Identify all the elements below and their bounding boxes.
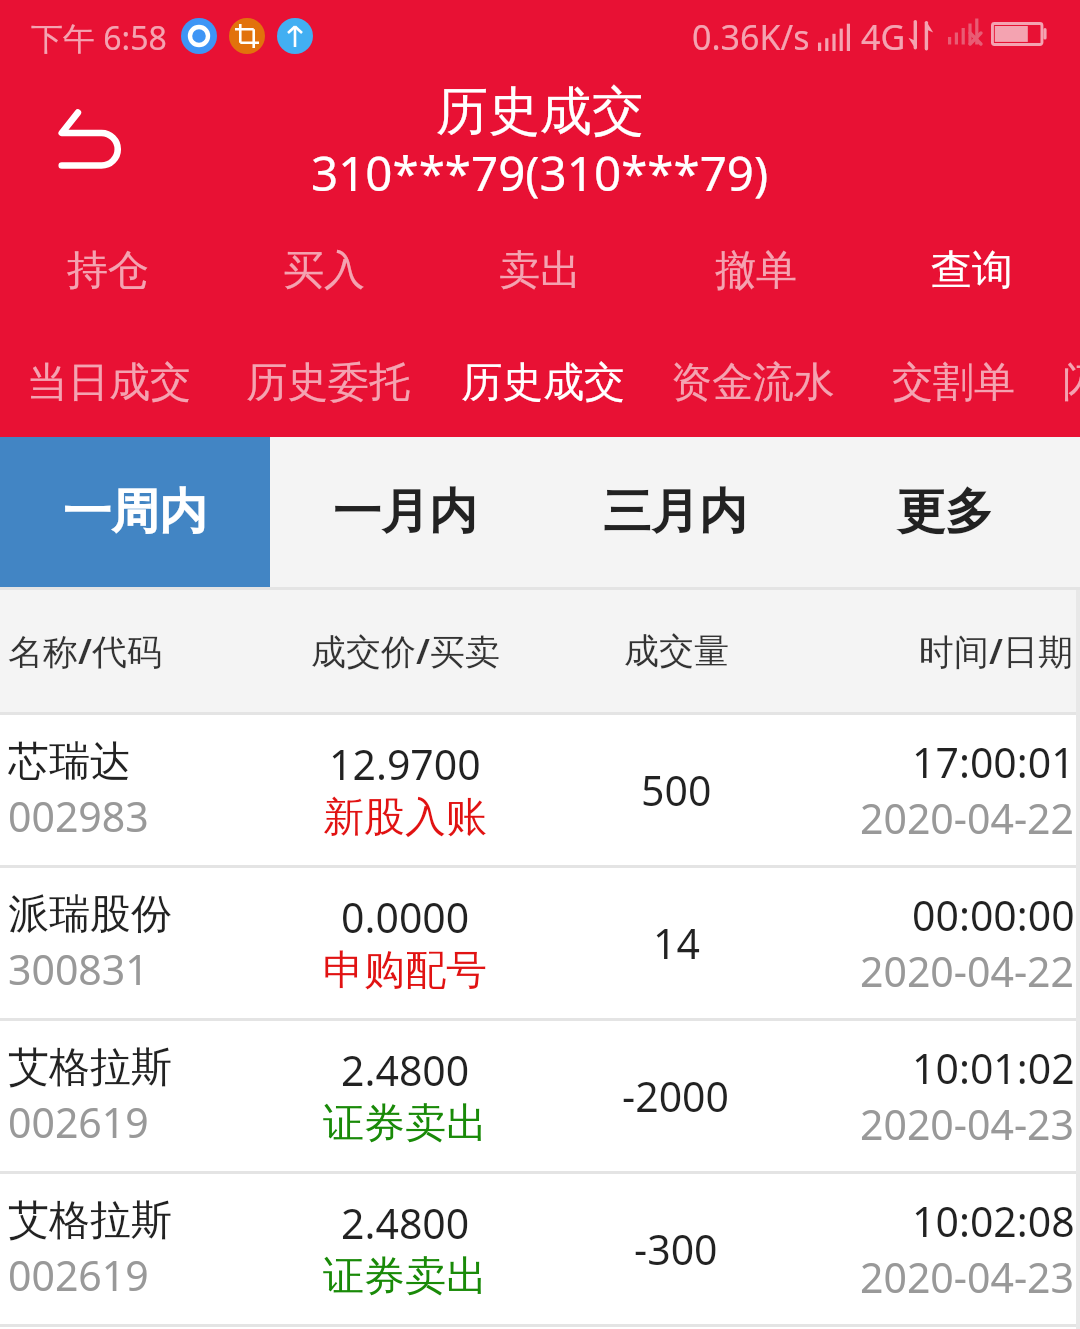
staticText: 撤单: [715, 245, 797, 297]
staticText: 一周内: [63, 482, 207, 542]
staticText: 名称/代码: [8, 627, 162, 675]
staticText: -2000: [622, 1068, 730, 1124]
staticText: 历史委托: [246, 357, 410, 409]
button[interactable]: 三月内: [540, 437, 810, 587]
button[interactable]: 艾格拉斯: [0, 1174, 1080, 1324]
staticText: 时间/日期: [919, 627, 1073, 675]
staticText: 成交量: [624, 629, 729, 673]
staticText: 艾格拉斯: [8, 1042, 172, 1094]
button[interactable]: 派瑞股份: [0, 868, 1080, 1018]
staticText: -300: [634, 1221, 718, 1277]
staticText: 一月内: [333, 482, 477, 542]
button[interactable]: 一月内: [270, 437, 540, 587]
staticText: 10:02:08: [912, 1193, 1075, 1249]
button[interactable]: 历史委托: [246, 350, 410, 416]
staticText: 更多: [897, 482, 993, 542]
staticText: 0.0000: [341, 889, 470, 945]
staticText: 芯瑞达: [8, 736, 131, 788]
staticText: 三月内: [603, 482, 747, 542]
staticText: 交割单: [892, 357, 1015, 409]
button[interactable]: 历史成交: [461, 350, 625, 416]
staticText: 2.4800: [341, 1042, 470, 1098]
staticText: 500: [641, 762, 712, 818]
staticText: 300831: [8, 941, 149, 997]
staticText: 成交价/买卖: [311, 627, 500, 675]
staticText: 派瑞股份: [8, 889, 172, 941]
staticText: 12.9700: [329, 736, 481, 792]
staticText: 00:00:00: [912, 887, 1075, 943]
button[interactable]: 交割单: [892, 350, 1015, 416]
button[interactable]: 更多: [810, 437, 1080, 587]
staticText: 10:01:02: [912, 1040, 1075, 1096]
staticText: 闪电委托: [1062, 357, 1080, 409]
button[interactable]: 查询: [864, 234, 1080, 308]
button[interactable]: 当日成交: [27, 350, 191, 416]
staticText: 证券卖出: [323, 1098, 487, 1150]
staticText: 卖出: [499, 245, 581, 297]
staticText: 新股入账: [323, 792, 487, 844]
staticText: 002619: [8, 1094, 149, 1150]
button[interactable]: 持仓: [0, 234, 216, 308]
staticText: 资金流水: [671, 357, 835, 409]
staticText: 17:00:01: [912, 734, 1075, 790]
staticText: 证券卖出: [323, 1251, 487, 1303]
staticText: 4G: [861, 14, 906, 60]
staticText: 310***79(310***79): [311, 140, 769, 205]
button[interactable]: 闪电委托: [1062, 350, 1080, 416]
staticText: 2.4800: [341, 1195, 470, 1251]
staticText: 当日成交: [27, 357, 191, 409]
staticText: 2020-04-23: [860, 1096, 1075, 1152]
button[interactable]: Back: [20, 87, 130, 189]
staticText: 2020-04-22: [860, 790, 1075, 846]
button[interactable]: 芯瑞达: [0, 715, 1080, 865]
staticText: 2020-04-22: [860, 943, 1075, 999]
button[interactable]: 一周内: [0, 437, 270, 587]
button[interactable]: 卖出: [432, 234, 648, 308]
staticText: 002983: [8, 788, 149, 844]
staticText: 下午 6:58: [31, 16, 167, 60]
staticText: 0.36K/s: [692, 14, 810, 60]
staticText: 2020-04-23: [860, 1249, 1075, 1305]
staticText: 艾格拉斯: [8, 1195, 172, 1247]
staticText: 002619: [8, 1247, 149, 1303]
button[interactable]: 撤单: [648, 234, 864, 308]
button[interactable]: 艾格拉斯: [0, 1021, 1080, 1171]
staticText: 持仓: [67, 245, 149, 297]
staticText: 查询: [931, 245, 1013, 297]
staticText: 历史成交: [461, 357, 625, 409]
button[interactable]: 资金流水: [671, 350, 835, 416]
staticText: 历史成交: [436, 79, 644, 145]
button[interactable]: 买入: [216, 234, 432, 308]
staticText: 申购配号: [323, 945, 487, 997]
staticText: 买入: [283, 245, 365, 297]
staticText: 14: [653, 915, 700, 971]
